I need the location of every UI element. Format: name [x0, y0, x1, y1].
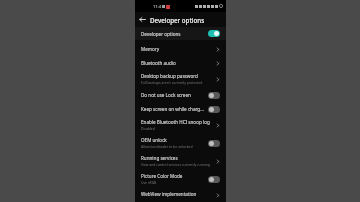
- button[interactable]: Do not use Lock screen: [135, 88, 226, 102]
- staticText: Developer options: [141, 31, 208, 37]
- staticText: 11:4: [153, 4, 161, 9]
- button[interactable]: On: [208, 30, 220, 37]
- button[interactable]: Memory: [135, 42, 226, 56]
- staticText: Allow bootloader to be unlocked: [141, 144, 193, 149]
- staticText: Desktop backup password: [141, 73, 198, 79]
- staticText: Full backups aren't currently protected: [141, 80, 203, 85]
- button[interactable]: Picture Color Mode: [135, 170, 226, 188]
- button[interactable]: Desktop backup password: [135, 70, 226, 88]
- staticText: Enable Bluetooth HCI snoop log: [141, 119, 210, 125]
- staticText: Use sRGB: [141, 180, 157, 185]
- button[interactable]: WebView implementation: [135, 188, 226, 202]
- staticText: Memory: [141, 46, 160, 52]
- button[interactable]: Bluetooth audio: [135, 56, 226, 70]
- button[interactable]: Off: [208, 92, 220, 99]
- staticText: OEM unlock: [141, 137, 167, 143]
- button[interactable]: Running services: [135, 152, 226, 170]
- button[interactable]: OEM unlock: [135, 134, 226, 152]
- button[interactable]: Enable Bluetooth HCI snoop log: [135, 116, 226, 134]
- staticText: Running services: [141, 155, 178, 161]
- button[interactable]: Developer options: [135, 27, 226, 40]
- button[interactable]: Off: [208, 106, 220, 113]
- staticText: Bluetooth audio: [141, 60, 176, 66]
- button[interactable]: Keep screen on while charging: [135, 102, 226, 116]
- staticText: WebView implementation: [141, 191, 197, 197]
- staticText: Keep screen on while charging: [141, 106, 205, 112]
- button[interactable]: Off: [208, 176, 220, 183]
- staticText: Disabled: [141, 126, 155, 131]
- button[interactable]: Navigate up: [135, 12, 150, 27]
- staticText: View and control services currently runn…: [141, 162, 210, 167]
- staticText: Developer options: [150, 16, 205, 24]
- button[interactable]: Off: [208, 140, 220, 147]
- staticText: Picture Color Mode: [141, 173, 183, 179]
- staticText: Do not use Lock screen: [141, 92, 191, 98]
